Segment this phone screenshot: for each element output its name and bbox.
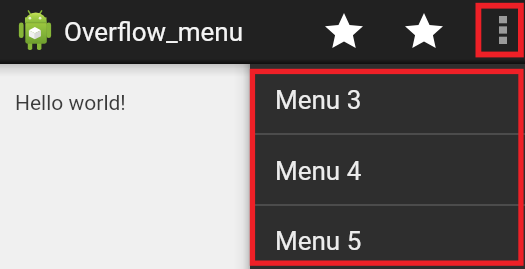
staticText: Overflow_menu [64,17,244,47]
staticText: Menu 3 [275,85,362,115]
button[interactable]: Menu 4 [250,135,525,205]
button[interactable]: Menu 5 [250,205,525,269]
button[interactable]: More options [479,3,525,56]
button[interactable]: Favorite [399,5,448,55]
button[interactable]: Menu 3 [250,64,525,134]
staticText: Hello world! [15,91,126,116]
button[interactable]: Favorite [319,5,368,55]
staticText: Menu 4 [275,156,362,186]
staticText: Menu 5 [275,226,362,256]
